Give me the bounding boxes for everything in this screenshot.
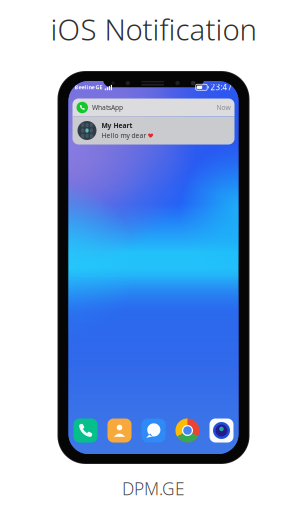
button[interactable]: Phone (73, 418, 97, 442)
button[interactable]: Messages (141, 418, 165, 442)
button[interactable]: WhatsApp (72, 98, 234, 144)
button[interactable]: Chrome (175, 418, 199, 442)
button[interactable]: Contacts (107, 418, 131, 442)
staticText: Now (216, 103, 230, 112)
staticText: Hello my dear (101, 131, 146, 140)
staticText: 23:47 (210, 82, 232, 92)
staticText: Beeline GE (74, 84, 102, 91)
staticText: My Heart (101, 121, 132, 130)
staticText: DPM.GE (122, 477, 185, 500)
staticText: iOS Notification (50, 9, 256, 48)
button[interactable]: Camera (209, 418, 233, 442)
staticText: WhatsApp (92, 103, 123, 112)
